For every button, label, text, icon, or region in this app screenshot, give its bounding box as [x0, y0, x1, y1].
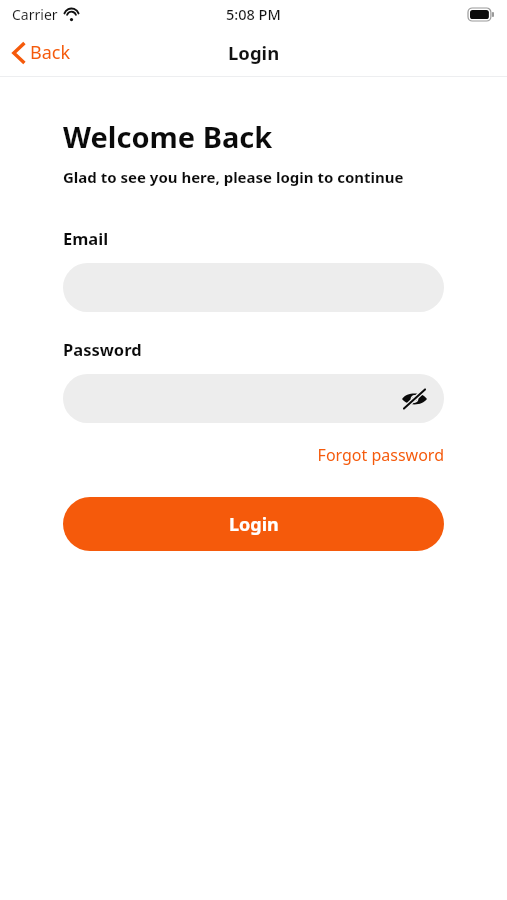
staticText: 5:08 PM [226, 4, 281, 24]
staticText: Email [63, 227, 109, 249]
staticText: Login [228, 40, 280, 65]
staticText: Back [30, 40, 71, 65]
button[interactable]: Show password [63, 374, 444, 423]
button[interactable]: Show password [396, 381, 432, 417]
staticText: Carrier [12, 5, 58, 24]
staticText: Welcome Back [63, 117, 273, 156]
staticText: Login [229, 512, 279, 537]
staticText: Password [63, 338, 142, 360]
button[interactable]: Forgot password [317, 444, 444, 466]
staticText: Glad to see you here, please login to co… [63, 167, 404, 187]
button[interactable]: Login [63, 497, 444, 551]
button[interactable]: Back [0, 34, 81, 71]
